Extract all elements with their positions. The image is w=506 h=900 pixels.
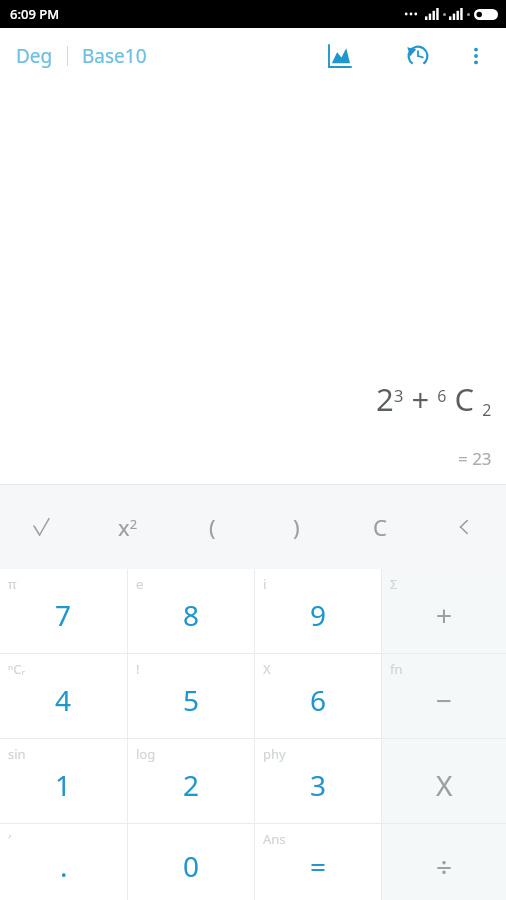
button[interactable]: ÷ — [382, 824, 506, 900]
staticText: Σ — [390, 575, 398, 593]
staticText: log — [136, 745, 156, 763]
staticText: 5 — [183, 681, 200, 719]
staticText: ⁿCᵣ — [8, 660, 25, 678]
staticText: x2 — [118, 512, 138, 542]
staticText: 6:09 PM — [10, 5, 60, 23]
button[interactable]: e — [128, 569, 254, 653]
button[interactable]: x2 — [85, 485, 170, 569]
button[interactable]: History — [394, 32, 442, 80]
staticText: 8 — [183, 596, 200, 634]
button[interactable]: ) — [254, 485, 338, 569]
button[interactable]: ! — [128, 654, 254, 738]
button[interactable]: fn — [382, 654, 506, 738]
other: Square root — [33, 517, 53, 537]
button[interactable]: C — [338, 485, 422, 569]
staticText: − — [436, 681, 453, 719]
staticText: X — [263, 660, 271, 678]
button[interactable]: Σ — [382, 569, 506, 653]
button[interactable]: sin — [0, 739, 127, 823]
button[interactable]: phy — [255, 739, 381, 823]
staticText: 9 — [310, 596, 327, 634]
staticText: . — [60, 847, 68, 885]
button[interactable]: X — [382, 739, 506, 823]
staticText: e — [136, 575, 144, 593]
staticText: C — [373, 512, 387, 542]
staticText: X — [436, 766, 453, 804]
button[interactable]: Square root — [0, 485, 85, 569]
button[interactable]: ( — [170, 485, 254, 569]
staticText: ( — [209, 512, 216, 542]
staticText: 0 — [183, 847, 200, 885]
staticText: Ans — [263, 830, 286, 848]
button[interactable]: ⁿCᵣ — [0, 654, 127, 738]
staticText: 7 — [55, 596, 72, 634]
staticText: + — [436, 596, 453, 634]
staticText: Deg — [16, 43, 53, 69]
staticText: π — [8, 575, 17, 593]
staticText: ) — [293, 512, 300, 542]
staticText: ′ — [8, 830, 12, 848]
button[interactable]: 0 — [128, 824, 254, 900]
staticText: 1 — [55, 766, 72, 804]
staticText: = 23 — [458, 447, 492, 470]
button[interactable]: log — [128, 739, 254, 823]
staticText: 4 — [55, 681, 72, 719]
staticText: phy — [263, 745, 286, 763]
button[interactable]: π — [0, 569, 127, 653]
staticText: sin — [8, 745, 26, 763]
staticText: = — [310, 847, 327, 885]
button[interactable]: Base10 — [78, 39, 151, 73]
staticText: ÷ — [436, 847, 453, 885]
button[interactable]: X — [255, 654, 381, 738]
other: Backspace — [456, 517, 472, 537]
button[interactable]: ′ — [0, 824, 127, 900]
staticText: 3 — [310, 766, 327, 804]
button[interactable]: Ans — [255, 824, 381, 900]
staticText: fn — [390, 660, 403, 678]
staticText: 23 + 6 C 2 — [376, 378, 492, 421]
button[interactable]: Deg — [12, 39, 57, 73]
staticText: ! — [136, 660, 140, 678]
staticText: i — [263, 575, 267, 593]
button[interactable]: i — [255, 569, 381, 653]
staticText: Base10 — [82, 43, 147, 69]
staticText: 6 — [310, 681, 327, 719]
button[interactable]: Graph — [316, 32, 364, 80]
button[interactable]: Backspace — [422, 485, 506, 569]
button[interactable]: More options — [454, 34, 498, 78]
staticText: 2 — [183, 766, 200, 804]
